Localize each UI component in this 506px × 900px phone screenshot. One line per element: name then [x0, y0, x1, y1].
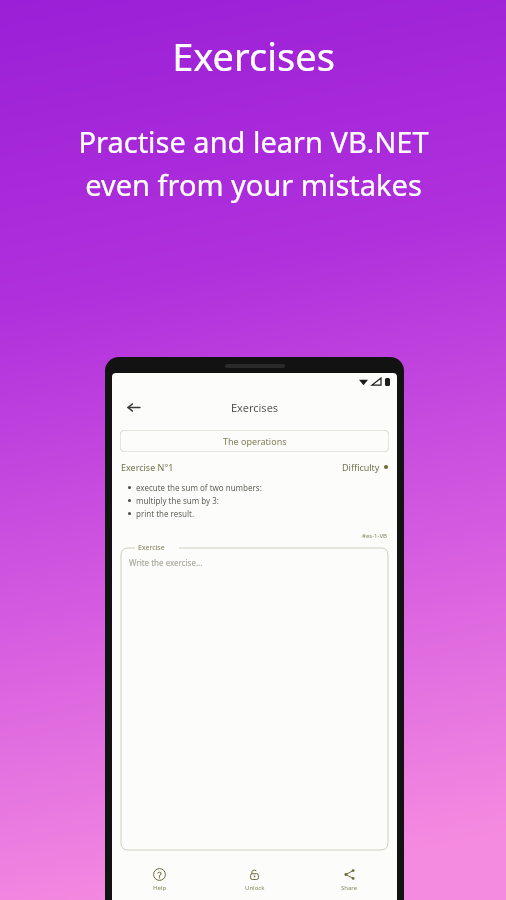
staticText: Share [341, 884, 358, 892]
staticText: Help [153, 884, 167, 892]
staticText: even from your mistakes [85, 165, 422, 204]
staticText: multiply the sum by 3: [136, 495, 219, 506]
staticText: Write the exercise... [129, 557, 203, 568]
button[interactable]: Back [120, 394, 146, 420]
staticText: Practise and learn VB.NET [78, 122, 429, 161]
button[interactable]: Share [302, 860, 397, 900]
staticText: Exercises [172, 30, 335, 82]
staticText: Unlock [245, 884, 265, 892]
staticText: Exercise N°1 [121, 461, 174, 473]
button[interactable]: Help [112, 860, 207, 900]
staticText: #es-1-VB [362, 532, 387, 540]
staticText: The operations [223, 435, 287, 447]
button[interactable]: The operations [120, 430, 389, 452]
button[interactable]: Exercise [121, 548, 388, 850]
staticText: execute the sum of two numbers: [136, 482, 262, 493]
staticText: Exercise [138, 543, 165, 553]
button[interactable]: Unlock [207, 860, 302, 900]
staticText: print the result. [136, 508, 195, 519]
staticText: Difficulty [342, 461, 380, 473]
staticText: Exercises [231, 400, 279, 415]
